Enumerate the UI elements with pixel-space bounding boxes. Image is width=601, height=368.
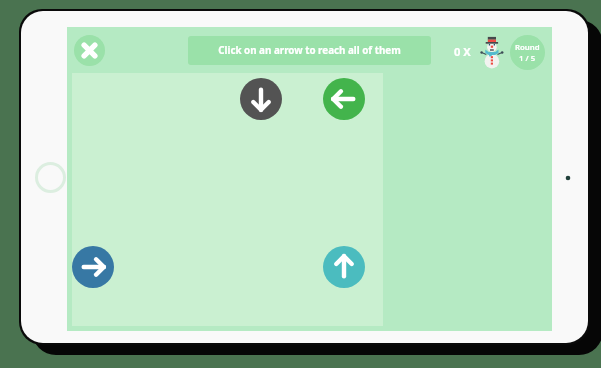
button[interactable]: Round bbox=[510, 35, 545, 70]
staticText: Click on an arrow to reach all of them bbox=[218, 44, 401, 57]
button[interactable]: Click on an arrow to reach all of them bbox=[188, 36, 431, 65]
button[interactable]: Arrow down bbox=[240, 78, 282, 120]
button[interactable]: Arrow right bbox=[72, 246, 114, 288]
button[interactable]: Close bbox=[74, 35, 105, 66]
button[interactable]: Arrow left bbox=[323, 78, 365, 120]
staticText: Round bbox=[515, 42, 540, 53]
staticText: 1 / 5 bbox=[519, 53, 536, 64]
button[interactable]: Arrow up bbox=[323, 246, 365, 288]
staticText: 0 X bbox=[454, 44, 471, 59]
